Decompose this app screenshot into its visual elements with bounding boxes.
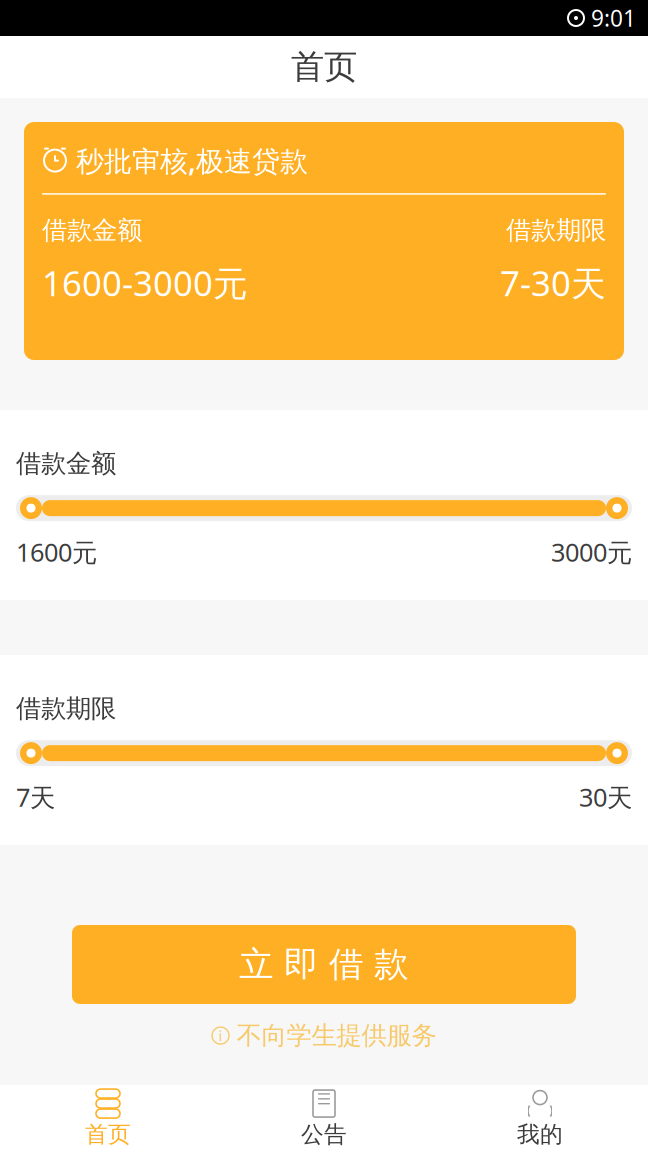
staticText: 借款期限	[506, 215, 606, 246]
staticText: 我的	[517, 1121, 563, 1148]
staticText: 公告	[301, 1121, 347, 1148]
staticText: 3000元	[551, 535, 632, 569]
staticText: 首页	[291, 46, 357, 87]
staticText: 7天	[16, 780, 55, 814]
staticText: 借款金额	[42, 215, 142, 246]
staticText: i	[218, 1026, 222, 1045]
staticText: 立 即 借 款	[239, 943, 409, 986]
staticText: 9:01	[591, 3, 636, 33]
staticText: 秒批审核,极速贷款	[76, 142, 308, 179]
staticText: 7-30天	[500, 260, 606, 306]
staticText: 不向学生提供服务	[236, 1020, 436, 1051]
button[interactable]: 公告	[216, 1085, 432, 1152]
button[interactable]: 首页	[0, 1085, 216, 1152]
staticText: 1600-3000元	[42, 260, 248, 306]
button[interactable]: 我的	[432, 1085, 648, 1152]
staticText: 借款金额	[16, 448, 116, 479]
staticText: 30天	[579, 780, 632, 814]
button[interactable]: 立 即 借 款	[72, 925, 576, 1004]
staticText: 1600元	[16, 535, 97, 569]
staticText: 首页	[85, 1121, 131, 1148]
staticText: 借款期限	[16, 693, 116, 724]
